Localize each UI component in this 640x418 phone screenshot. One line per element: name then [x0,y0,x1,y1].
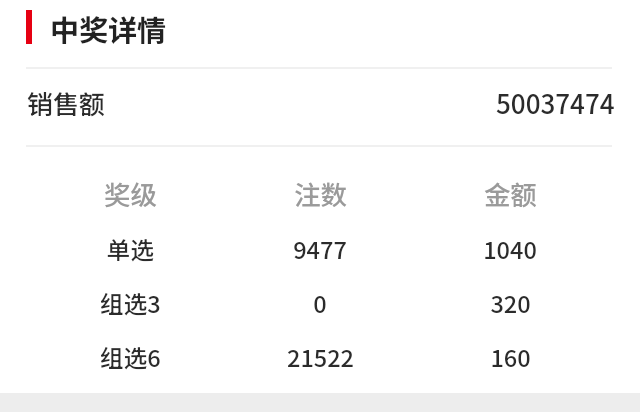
staticText: 160 [490,340,531,374]
button[interactable]: 组选6 [0,330,640,384]
button[interactable]: 单选 [0,222,640,276]
button[interactable]: 组选3 [0,276,640,330]
staticText: 销售额 [27,84,106,122]
staticText: 21522 [287,340,354,374]
staticText: 50037474 [496,84,615,122]
button[interactable]: 中奖详情 [0,0,640,67]
staticText: 组选3 [100,286,161,320]
staticText: 9477 [293,232,347,266]
staticText: 中奖详情 [50,7,167,49]
staticText: 320 [490,286,531,320]
staticText: 1040 [483,232,537,266]
staticText: 单选 [107,232,154,266]
staticText: 0 [313,286,327,320]
staticText: 注数 [294,174,347,212]
staticText: 金额 [484,174,537,212]
button[interactable]: 销售额 [0,69,640,145]
staticText: 组选6 [100,340,161,374]
staticText: 奖级 [104,174,157,212]
